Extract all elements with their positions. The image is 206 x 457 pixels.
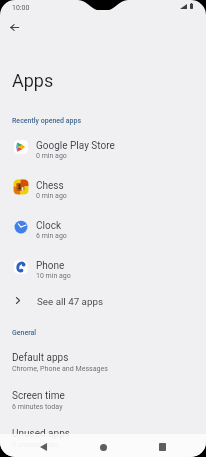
- button[interactable]: Recent apps: [147, 434, 178, 457]
- button[interactable]: Phone: [0, 247, 206, 287]
- button[interactable]: Screen time: [0, 380, 206, 418]
- button[interactable]: Clock: [0, 207, 206, 247]
- staticText: 6 min ago: [36, 232, 67, 240]
- staticText: Chess: [36, 180, 64, 192]
- button[interactable]: See all 47 apps: [0, 288, 206, 313]
- button[interactable]: Google Play Store: [0, 127, 206, 167]
- staticText: 6 minutes today: [12, 402, 63, 410]
- staticText: 10 min ago: [36, 272, 71, 280]
- staticText: 0 min ago: [36, 152, 67, 160]
- button[interactable]: Home: [88, 434, 119, 457]
- button[interactable]: Chess: [0, 167, 206, 207]
- button[interactable]: Back: [4, 17, 25, 38]
- staticText: Screen time: [12, 390, 65, 402]
- staticText: 0 unused apps: [12, 440, 59, 448]
- staticText: Unused apps: [12, 428, 70, 440]
- staticText: See all 47 apps: [37, 296, 103, 307]
- staticText: General: [12, 329, 37, 337]
- button[interactable]: Default apps: [0, 342, 206, 380]
- staticText: Google Play Store: [36, 140, 115, 152]
- staticText: 10:00: [12, 4, 30, 12]
- staticText: Default apps: [12, 352, 69, 364]
- staticText: Phone: [36, 260, 65, 272]
- staticText: Recently opened apps: [12, 117, 82, 125]
- staticText: Apps: [12, 70, 54, 91]
- button[interactable]: Unused apps: [0, 418, 206, 456]
- staticText: 0 min ago: [36, 192, 67, 200]
- staticText: Chrome, Phone and Messages: [12, 364, 108, 372]
- staticText: Clock: [36, 220, 61, 232]
- button[interactable]: Back: [28, 434, 59, 457]
